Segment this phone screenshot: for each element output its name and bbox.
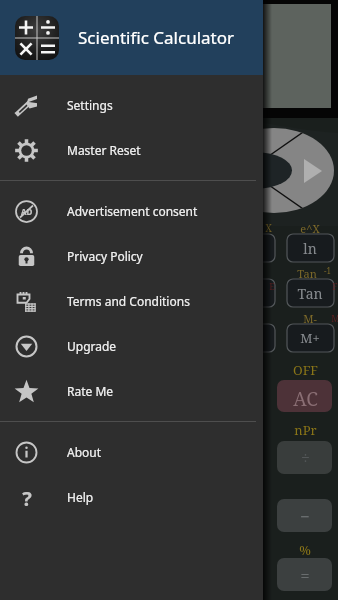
button[interactable]: Settings	[0, 83, 263, 127]
staticText: %	[299, 541, 311, 559]
staticText: Tan	[297, 266, 317, 281]
staticText: −	[300, 505, 310, 525]
staticText: Rate Me	[67, 383, 114, 399]
staticText: ln	[303, 239, 317, 258]
staticText: Upgrade	[67, 338, 117, 354]
staticText: OFF	[293, 361, 318, 379]
button[interactable]: Scientific Calculator	[0, 0, 263, 75]
staticText: X	[265, 221, 272, 235]
staticText: Master Reset	[67, 142, 141, 158]
button[interactable]: Master Reset	[0, 128, 263, 172]
staticText: M	[331, 312, 338, 324]
staticText: =	[300, 564, 310, 584]
staticText: E	[269, 280, 275, 292]
staticText: Help	[67, 489, 94, 505]
staticText: About	[67, 444, 102, 460]
staticText: nPr	[294, 421, 317, 439]
staticText: Tan	[297, 284, 323, 303]
staticText: AD	[21, 206, 33, 217]
staticText: -1	[324, 265, 331, 276]
button[interactable]: Terms and Conditions	[0, 279, 263, 323]
staticText: Advertisement consent	[67, 203, 198, 219]
staticText: F	[332, 280, 338, 292]
staticText: ÷	[301, 447, 310, 467]
button[interactable]: AD	[0, 189, 263, 233]
button[interactable]: About	[0, 430, 263, 474]
staticText: Settings	[67, 97, 113, 113]
staticText: M-	[303, 311, 317, 326]
staticText: ?	[22, 485, 32, 510]
button[interactable]: Upgrade	[0, 324, 263, 368]
button[interactable]: Privacy Policy	[0, 234, 263, 278]
button[interactable]: ?	[0, 475, 263, 519]
staticText: M+	[300, 329, 320, 347]
staticText: Scientific Calculator	[78, 26, 235, 49]
staticText: AC	[293, 386, 318, 406]
button[interactable]: Rate Me	[0, 369, 263, 413]
button[interactable]: Close navigation drawer	[263, 0, 338, 600]
staticText: e^X	[300, 221, 320, 236]
staticText: Privacy Policy	[67, 248, 143, 264]
staticText: Terms and Conditions	[67, 293, 190, 309]
